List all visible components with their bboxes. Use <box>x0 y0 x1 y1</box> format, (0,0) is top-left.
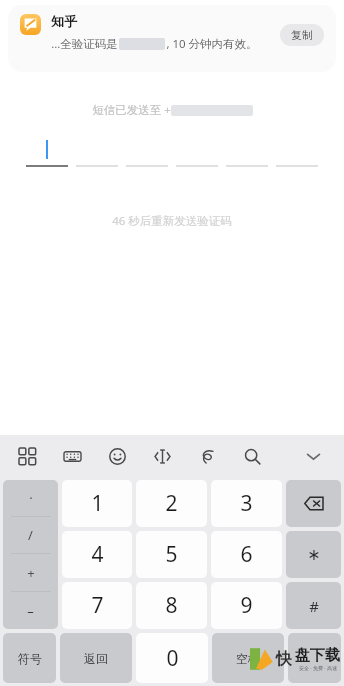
button[interactable]: Hide keyboard <box>300 443 326 469</box>
staticText: 符号 <box>18 651 42 666</box>
button[interactable]: 6 <box>211 531 282 578</box>
staticText: + <box>27 564 35 582</box>
staticText: # <box>309 596 319 616</box>
staticText: , 10 分钟内有效。 <box>166 36 258 52</box>
button[interactable]: Backspace <box>286 480 341 527</box>
staticText: 返回 <box>84 651 108 666</box>
staticText: 5 <box>165 540 178 569</box>
staticText: 安全 · 免费 · 高速 <box>299 665 337 672</box>
button[interactable]: 符号 <box>3 633 56 683</box>
button[interactable]: 0 <box>136 633 208 683</box>
staticText: 6 <box>240 540 253 569</box>
button[interactable]: 返回 <box>60 633 132 683</box>
staticText: 4 <box>91 540 104 569</box>
button[interactable]: 4 <box>62 531 132 578</box>
staticText: 1 <box>91 489 104 518</box>
button[interactable]: 8 <box>136 582 207 629</box>
staticText: 9 <box>240 591 253 620</box>
button[interactable]: 空格 <box>212 633 284 683</box>
button[interactable]: · <box>3 480 58 629</box>
staticText: 7 <box>91 591 104 620</box>
button[interactable]: Emoji <box>104 443 130 469</box>
button[interactable]: ∗ <box>286 531 341 578</box>
staticText: 8 <box>165 591 178 620</box>
button[interactable]: 知乎 <box>8 5 336 72</box>
staticText: 2 <box>165 489 178 518</box>
button[interactable]: Clipboard <box>194 443 220 469</box>
staticText: / <box>28 526 33 544</box>
staticText: – <box>27 602 34 620</box>
staticText: 复制 <box>291 28 313 42</box>
staticText: 盘下载 <box>295 646 340 665</box>
staticText: 3 <box>240 489 253 518</box>
staticText: 空格 <box>236 651 260 666</box>
staticText: 46 秒后重新发送验证码 <box>112 213 232 229</box>
button[interactable]: # <box>286 582 341 629</box>
staticText: ∗ <box>307 545 321 564</box>
button[interactable]: Apps <box>14 443 40 469</box>
button[interactable]: 7 <box>62 582 132 629</box>
button[interactable]: 复制 <box>280 24 324 46</box>
button[interactable]: Search <box>239 443 265 469</box>
button[interactable]: 1 <box>62 480 132 527</box>
staticText: 短信已发送至 + <box>92 102 171 118</box>
button[interactable] <box>288 633 341 683</box>
staticText: · <box>29 489 33 507</box>
staticText: …全验证码是 <box>51 36 118 52</box>
button[interactable]: Keyboard <box>59 443 85 469</box>
button[interactable]: 3 <box>211 480 282 527</box>
staticText: 知乎 <box>51 13 77 29</box>
staticText: 0 <box>166 644 179 673</box>
button[interactable]: Text tools <box>149 443 175 469</box>
button[interactable]: 5 <box>136 531 207 578</box>
staticText: 快 <box>276 649 292 669</box>
button[interactable]: 2 <box>136 480 207 527</box>
button[interactable]: 9 <box>211 582 282 629</box>
